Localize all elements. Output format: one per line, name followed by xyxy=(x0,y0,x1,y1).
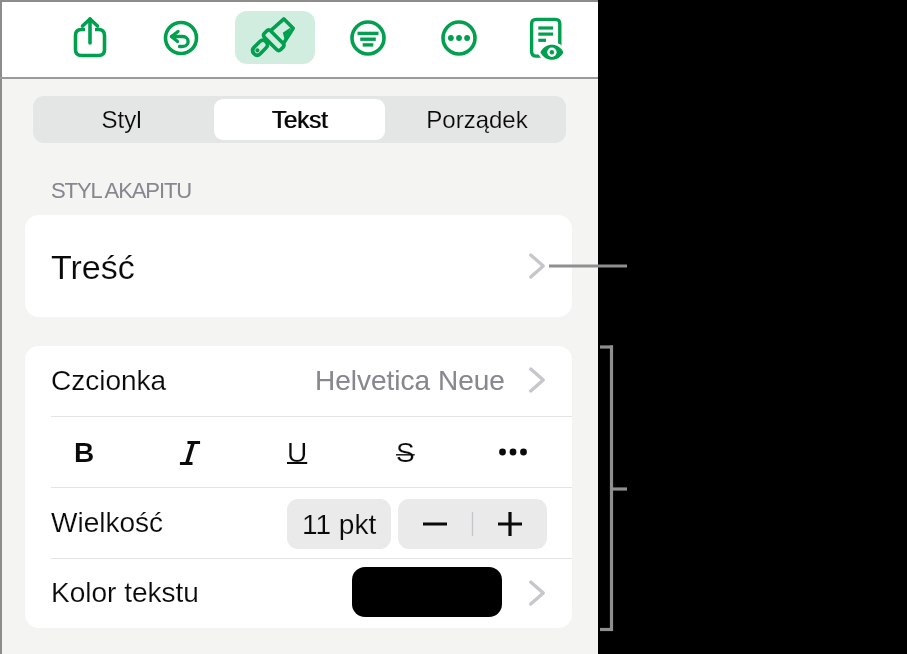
button[interactable]: Share xyxy=(63,11,117,65)
button[interactable]: Tekst xyxy=(210,96,388,143)
button[interactable]: Kolor tekstu xyxy=(25,559,572,628)
staticText: Treść xyxy=(51,248,135,286)
staticText: Styl xyxy=(101,106,142,133)
button[interactable]: Preview document xyxy=(519,11,573,65)
button[interactable]: Styl xyxy=(33,96,210,143)
button[interactable]: U xyxy=(272,417,322,487)
button[interactable]: 11 pkt xyxy=(287,499,391,549)
button[interactable]: Format xyxy=(235,11,315,64)
button[interactable]: Undo xyxy=(154,11,208,65)
button[interactable]: S xyxy=(380,417,430,487)
staticText: Tekst xyxy=(272,106,329,133)
staticText: Czcionka xyxy=(51,365,167,396)
button[interactable]: Paragraph style xyxy=(341,11,395,65)
staticText: Wielkość xyxy=(51,507,164,538)
staticText: Kolor tekstu xyxy=(51,577,199,608)
button[interactable]: B xyxy=(59,417,109,487)
staticText: Tekst xyxy=(271,106,328,133)
button[interactable]: Czcionka xyxy=(25,346,572,416)
staticText: U xyxy=(287,437,308,468)
staticText: Porządek xyxy=(426,106,528,133)
staticText: Helvetica Neue xyxy=(315,365,505,396)
button[interactable]: More text options xyxy=(488,417,538,487)
button[interactable]: Treść xyxy=(25,215,572,317)
button[interactable]: More options xyxy=(432,11,486,65)
button[interactable]: Decrease font size xyxy=(398,499,472,549)
staticText: S xyxy=(396,437,415,468)
staticText: B xyxy=(74,437,95,468)
staticText: 11 pkt xyxy=(302,509,377,540)
staticText: STYL AKAPITU xyxy=(51,178,192,203)
button[interactable]: Porządek xyxy=(388,96,566,143)
button[interactable]: Increase font size xyxy=(473,499,547,549)
button[interactable]: Italic xyxy=(165,417,215,487)
